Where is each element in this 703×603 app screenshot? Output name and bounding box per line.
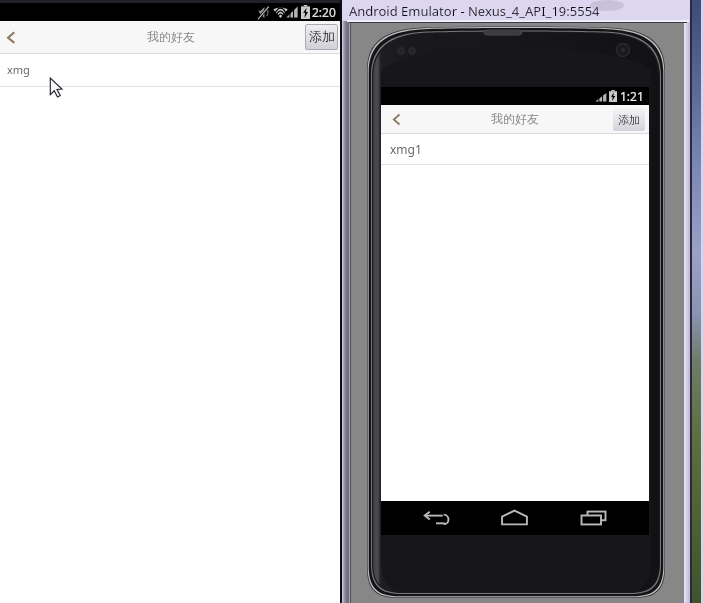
button[interactable]: xmg [0,54,340,86]
staticText: xmg1 [390,141,422,157]
button[interactable]: Back [384,105,408,134]
button[interactable]: 添加 [305,24,338,50]
button[interactable]: Recents [571,501,615,535]
button[interactable]: Back [414,501,458,535]
button[interactable]: Home [493,501,537,535]
staticText: Android Emulator - Nexus_4_API_19:5554 [349,2,600,20]
button[interactable]: xmg1 [381,134,649,164]
staticText: 添加 [618,113,640,127]
staticText: xmg [7,62,30,77]
staticText: 2:20 [312,4,336,20]
staticText: 1:21 [620,88,644,104]
button[interactable]: Back [0,21,24,54]
button[interactable]: 添加 [613,108,645,131]
staticText: 添加 [309,28,335,44]
staticText: 我的好友 [491,111,539,126]
staticText: 我的好友 [147,29,195,44]
